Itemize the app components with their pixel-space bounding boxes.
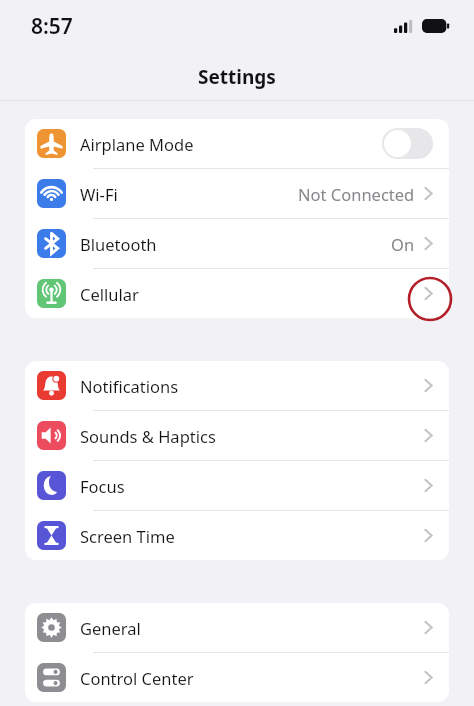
- button[interactable]: Bluetooth: [25, 219, 449, 268]
- button[interactable]: Sounds & Haptics: [25, 411, 449, 460]
- staticText: Sounds & Haptics: [80, 425, 216, 447]
- staticText: 8:57: [31, 12, 73, 41]
- staticText: On: [391, 233, 415, 255]
- staticText: Not Connected: [298, 183, 415, 205]
- button[interactable]: Notifications: [25, 361, 449, 410]
- button[interactable]: Control Center: [25, 653, 449, 702]
- staticText: Screen Time: [80, 525, 175, 547]
- button[interactable]: Focus: [25, 461, 449, 510]
- button[interactable]: Cellular: [25, 269, 449, 318]
- staticText: Cellular: [80, 283, 139, 305]
- button[interactable]: Wi-Fi: [25, 169, 449, 218]
- staticText: General: [80, 617, 141, 639]
- staticText: Airplane Mode: [80, 133, 194, 155]
- staticText: Bluetooth: [80, 233, 157, 255]
- button[interactable]: General: [25, 603, 449, 652]
- staticText: Settings: [198, 64, 276, 90]
- staticText: Control Center: [80, 667, 194, 689]
- button[interactable]: Airplane Mode: [25, 119, 449, 168]
- staticText: Focus: [80, 475, 125, 497]
- staticText: Notifications: [80, 375, 179, 397]
- button[interactable]: Airplane Mode toggle, off: [382, 128, 433, 159]
- staticText: Wi-Fi: [80, 183, 118, 205]
- button[interactable]: Screen Time: [25, 511, 449, 560]
